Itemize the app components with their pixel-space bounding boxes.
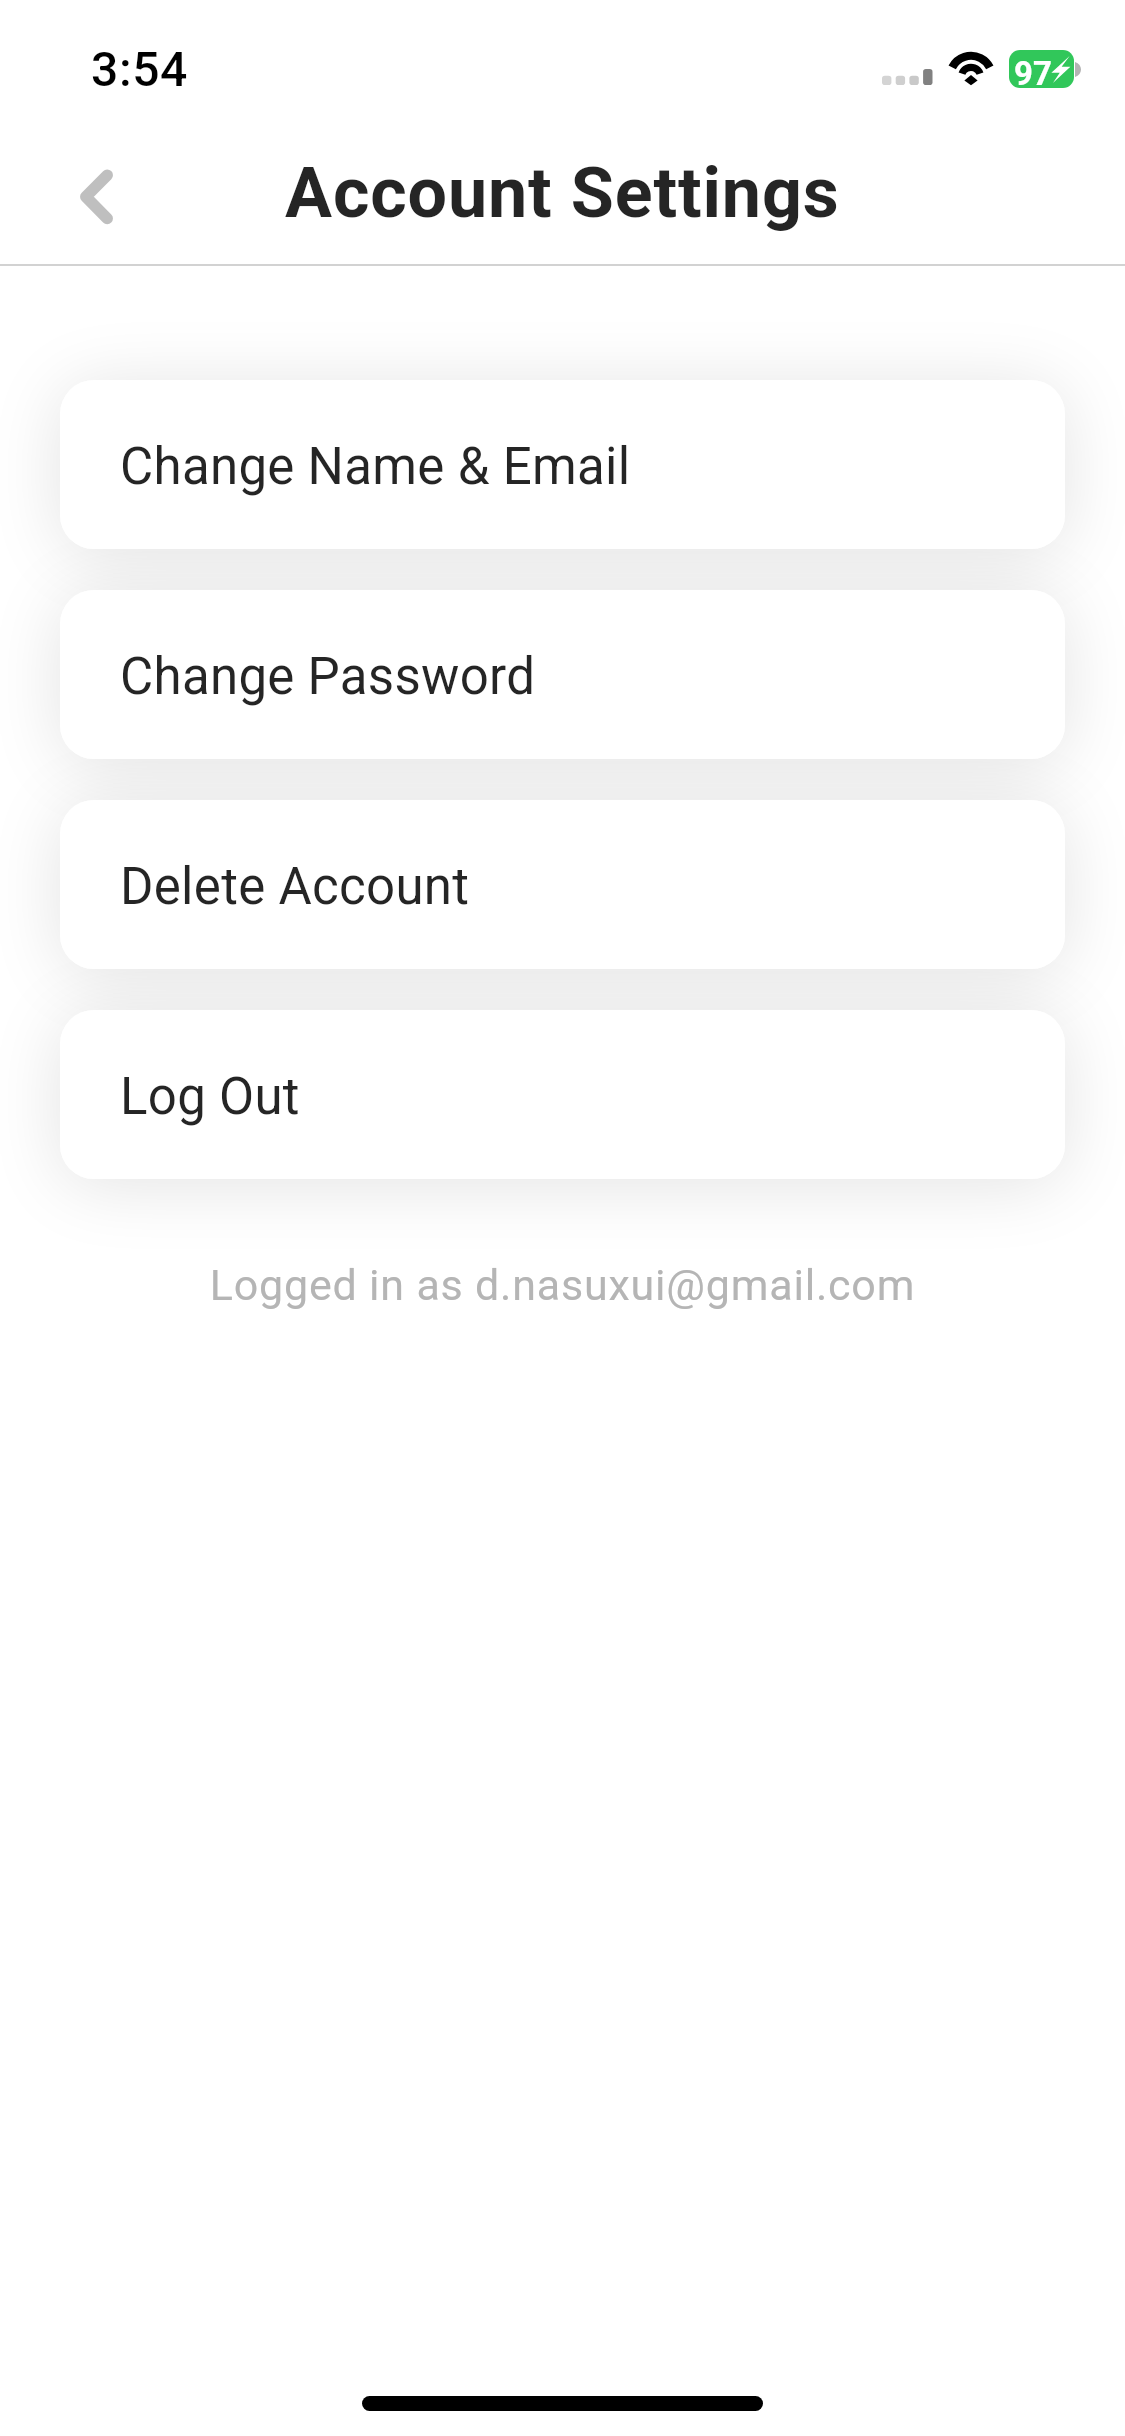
button[interactable]: Back	[52, 127, 142, 247]
staticText: Account Settings	[285, 152, 840, 234]
button[interactable]: Delete Account	[60, 800, 1065, 969]
staticText: Logged in as d.nasuxui@gmail.com	[0, 1260, 1125, 1310]
button[interactable]: Change Name & Email	[60, 380, 1065, 549]
staticText: 3:54	[91, 41, 188, 97]
staticText: Delete Account	[120, 857, 470, 917]
button[interactable]: Change Password	[60, 590, 1065, 759]
staticText: Log Out	[120, 1067, 300, 1127]
button[interactable]: Log Out	[60, 1010, 1065, 1179]
staticText: 97	[1014, 54, 1052, 88]
staticText: Change Name & Email	[120, 437, 631, 497]
staticText: Change Password	[120, 647, 536, 707]
